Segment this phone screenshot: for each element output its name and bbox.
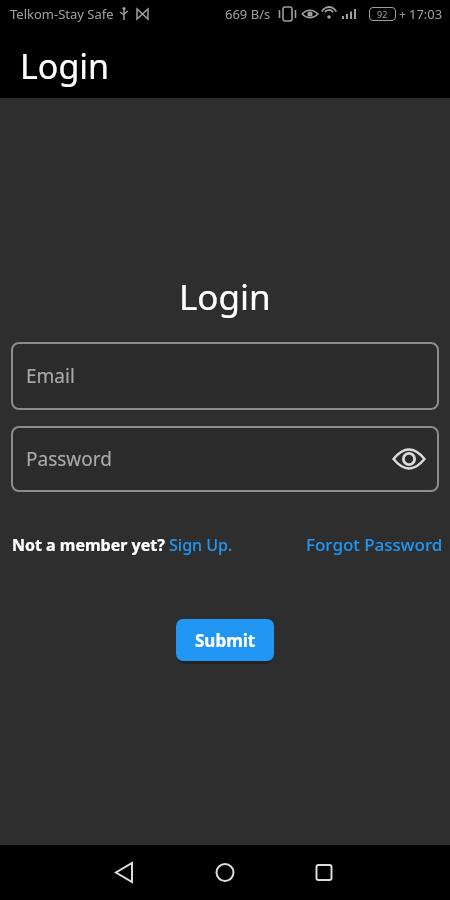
staticText: 17:03 xyxy=(409,5,443,23)
staticText: Login xyxy=(20,43,110,89)
staticText: + xyxy=(399,6,406,22)
button[interactable]: Forgot Password xyxy=(306,533,443,556)
button[interactable] xyxy=(393,443,425,475)
button[interactable]: Password xyxy=(11,426,439,492)
staticText: Password xyxy=(26,446,112,472)
button[interactable]: Submit xyxy=(176,619,274,661)
staticText: 92 xyxy=(377,8,388,20)
staticText: Login xyxy=(179,273,271,321)
staticText: Telkom-Stay Safe xyxy=(10,5,114,23)
button[interactable] xyxy=(304,853,344,893)
button[interactable] xyxy=(205,853,245,893)
button[interactable] xyxy=(104,853,144,893)
button[interactable]: Not a member yet? Sign Up. xyxy=(12,534,233,556)
staticText: Submit xyxy=(195,629,256,652)
staticText: 669 B/s xyxy=(225,5,271,23)
staticText: Email xyxy=(26,363,75,389)
button[interactable]: Email xyxy=(11,342,439,410)
